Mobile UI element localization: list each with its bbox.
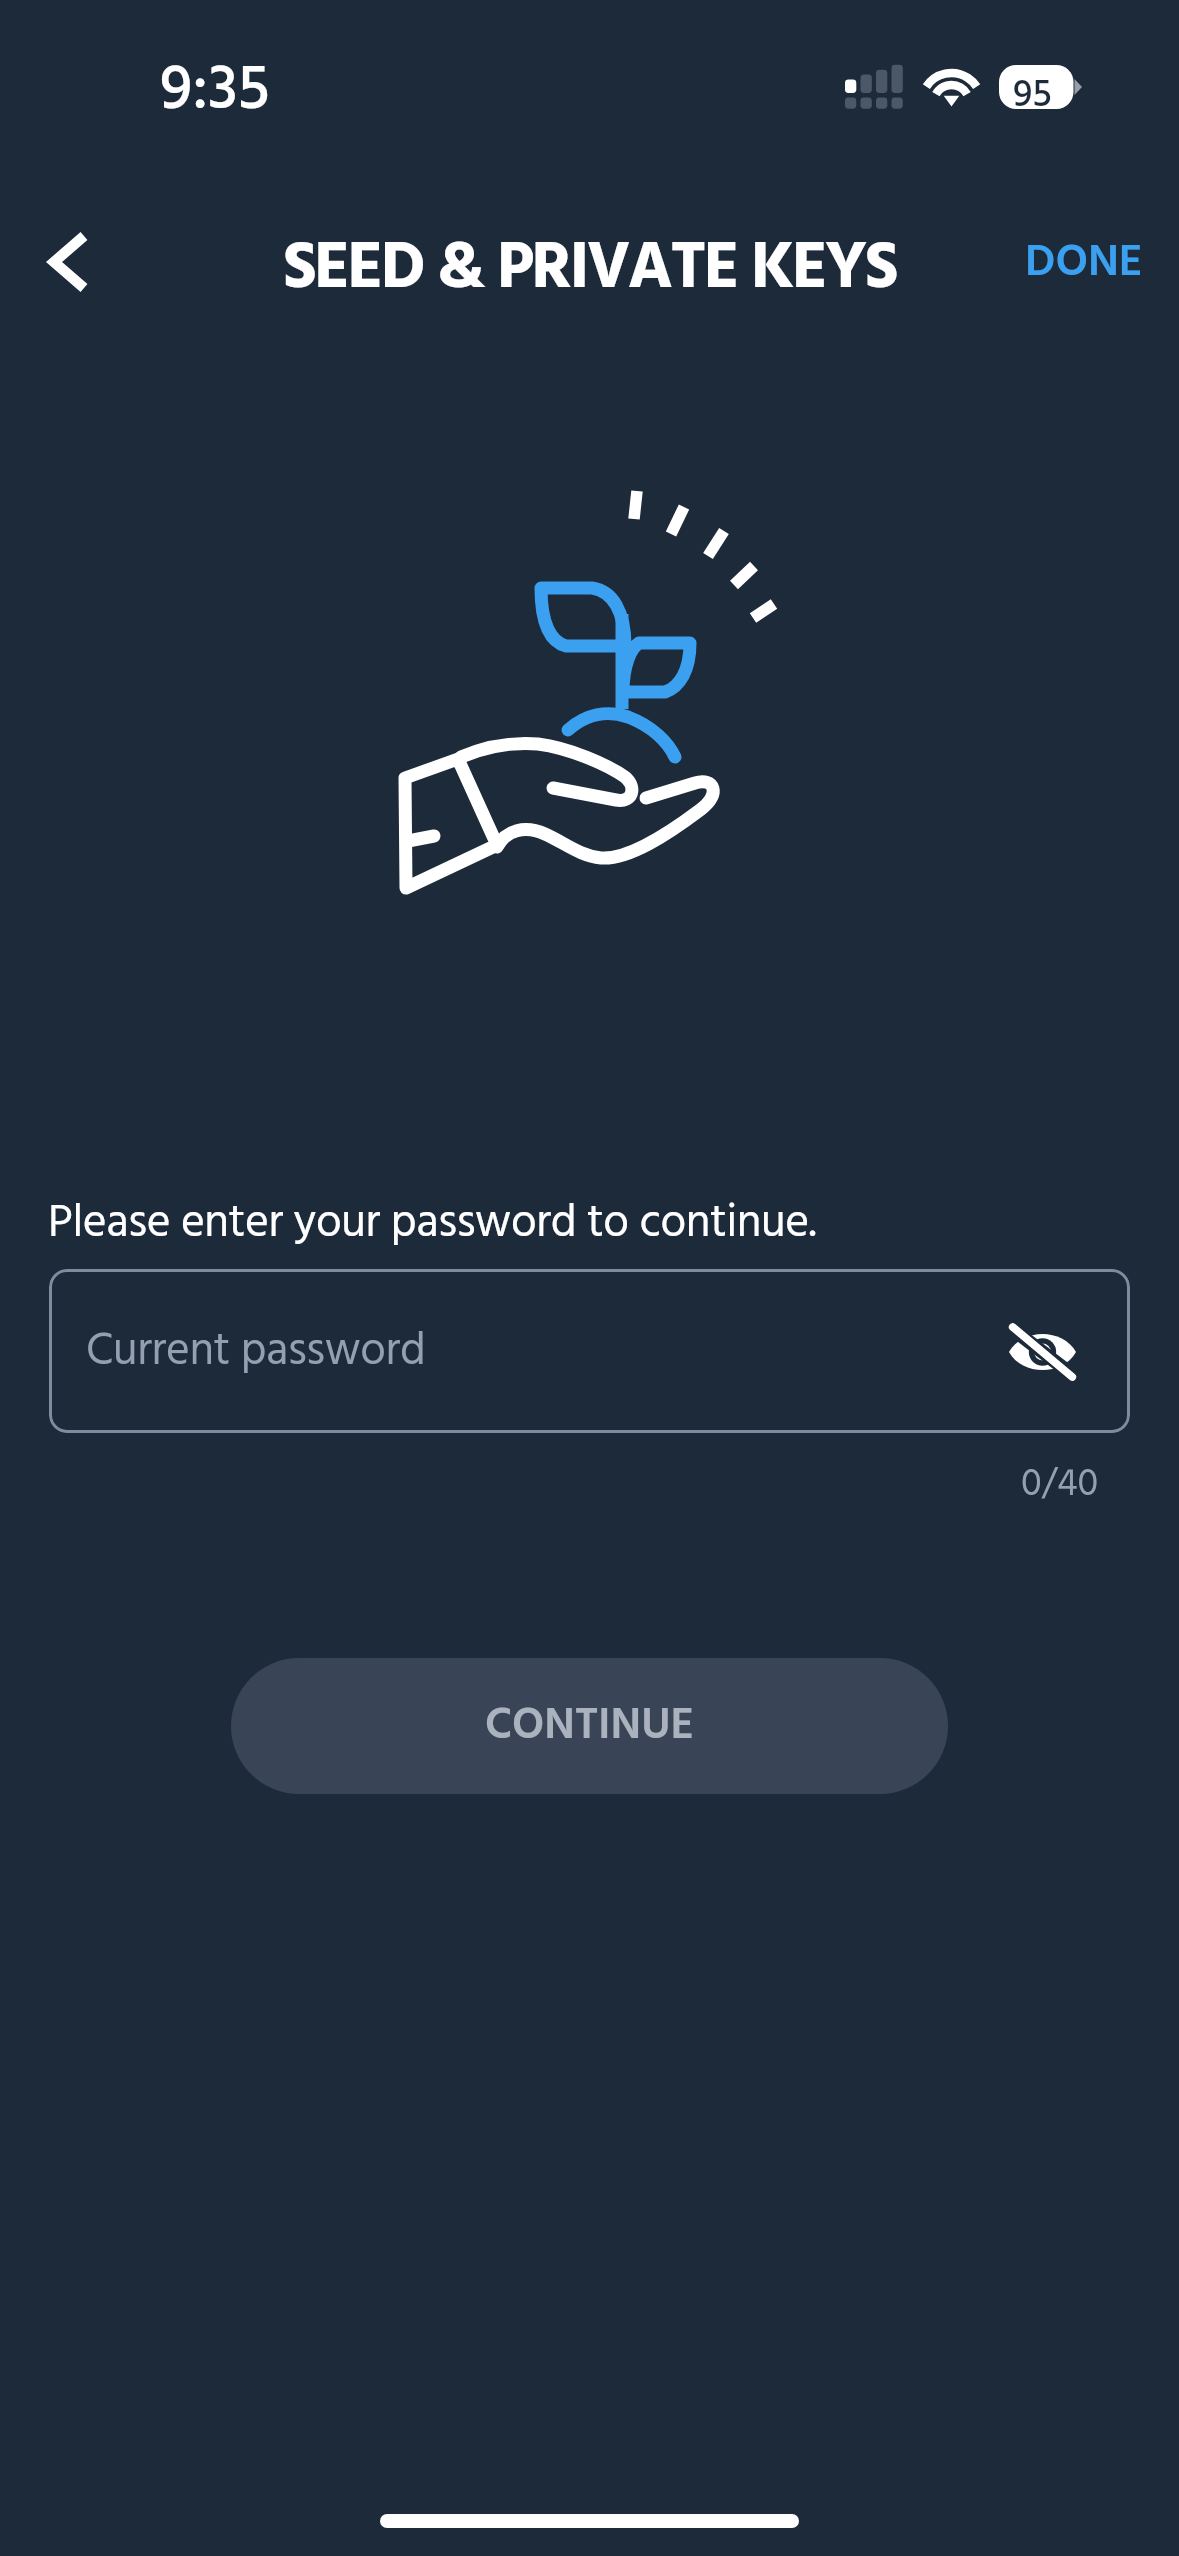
staticText: 0/40 bbox=[1021, 1455, 1099, 1516]
button[interactable]: Current password bbox=[49, 1269, 1130, 1433]
button[interactable]: CONTINUE bbox=[231, 1658, 948, 1794]
staticText: 9:35 bbox=[160, 42, 270, 143]
staticText: SEED & PRIVATE KEYS bbox=[0, 218, 1179, 323]
button[interactable]: Show password bbox=[997, 1307, 1087, 1397]
staticText: CONTINUE bbox=[485, 1691, 695, 1762]
button[interactable]: Back bbox=[24, 218, 112, 306]
staticText: Please enter your password to continue. bbox=[48, 1188, 816, 1261]
button[interactable]: DONE bbox=[1009, 214, 1159, 314]
staticText: DONE bbox=[1025, 228, 1143, 300]
staticText: Current password bbox=[86, 1316, 426, 1389]
staticText: 95 bbox=[1013, 66, 1052, 110]
